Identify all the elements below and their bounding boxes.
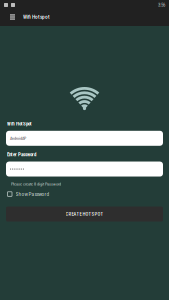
- button[interactable]: CREATE HOTSPOT: [6, 207, 163, 222]
- staticText: CREATE HOTSPOT: [65, 211, 103, 217]
- button[interactable]: Show Password: [6, 191, 163, 198]
- staticText: Wifi HotSpot: [7, 121, 32, 127]
- button[interactable]: Open navigation menu: [2, 10, 23, 26]
- staticText: AndroidAP: [10, 136, 26, 141]
- staticText: Wifi Hotspot: [23, 14, 50, 20]
- staticText: Please create 8 digit Password: [11, 182, 61, 187]
- staticText: 3:56: [158, 2, 165, 8]
- staticText: Enter Password: [7, 152, 36, 158]
- staticText: Show Password: [15, 191, 49, 197]
